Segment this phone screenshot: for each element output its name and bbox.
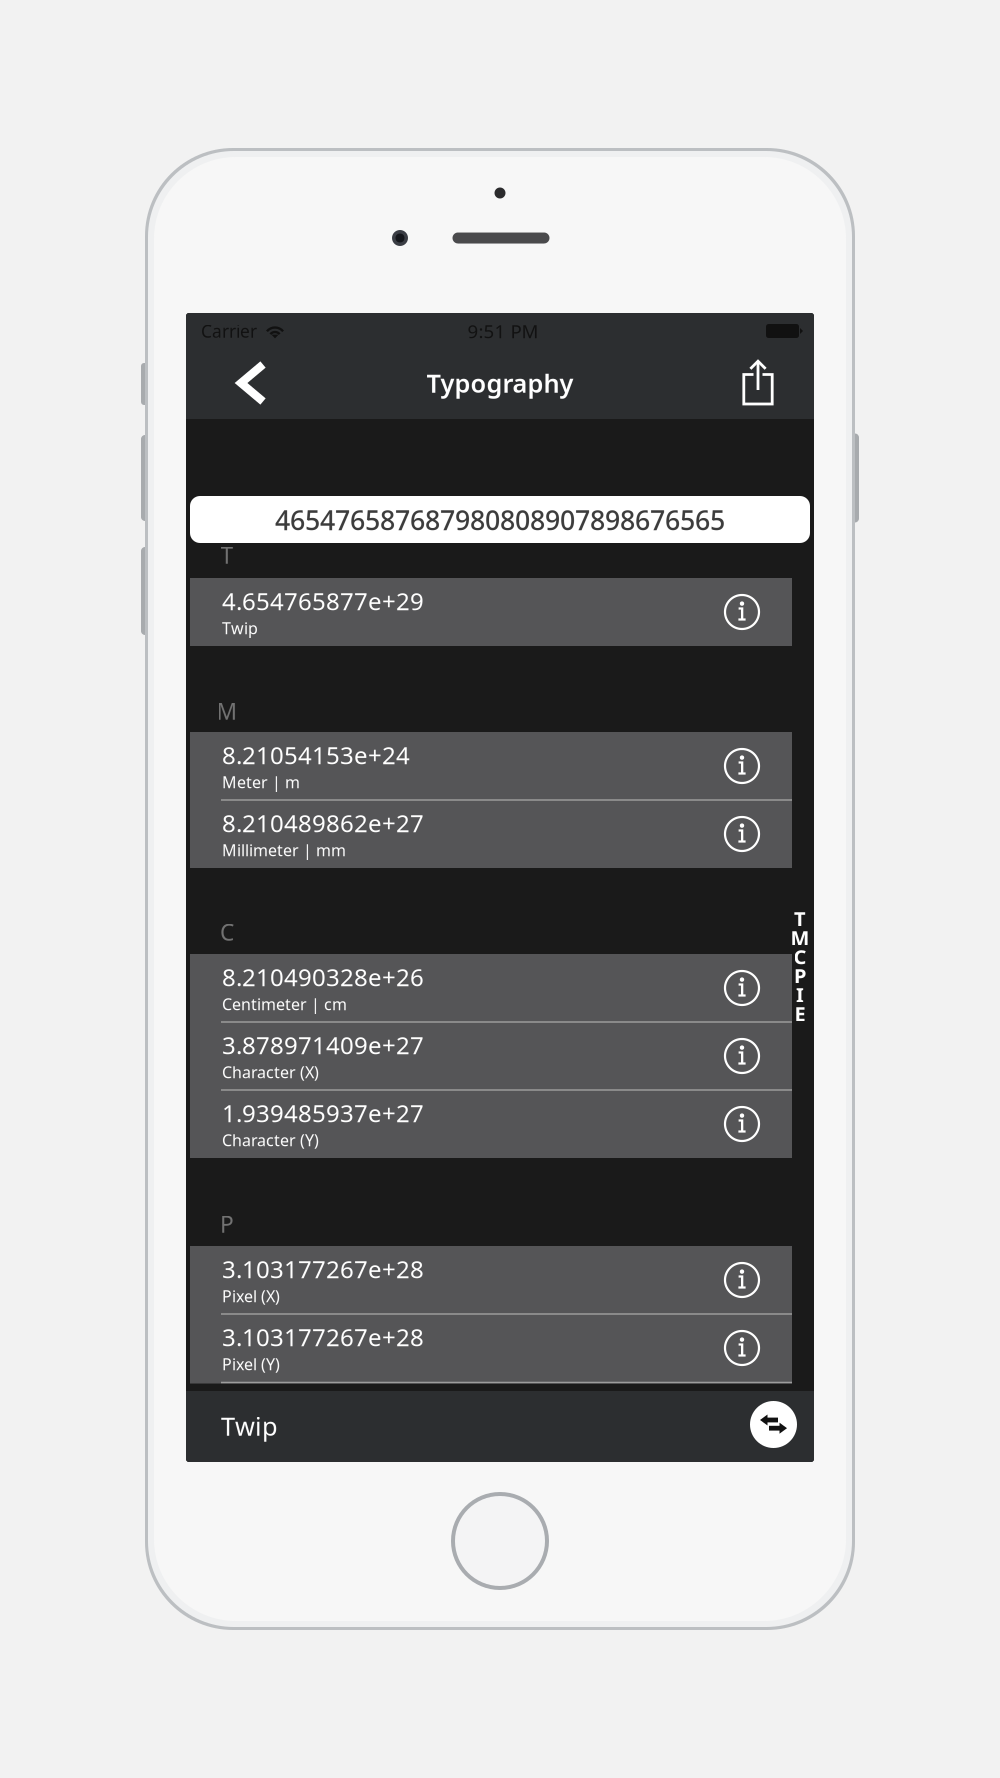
staticText: 4.654765877e+29 [222, 585, 424, 617]
button[interactable]: 1.939485937e+27 [190, 1090, 792, 1158]
staticText: Millimeter | mm [222, 839, 346, 861]
staticText: 8.210490328e+26 [222, 961, 424, 993]
button[interactable]: Back [215, 347, 289, 419]
staticText: 8.210489862e+27 [222, 807, 424, 839]
button[interactable]: 3.103177267e+28 [190, 1246, 792, 1314]
button[interactable]: 8.210489862e+27 [190, 800, 792, 868]
button[interactable]: Section index [786, 909, 814, 1023]
staticText: T [220, 540, 233, 570]
staticText: Character (X) [222, 1061, 319, 1083]
staticText: P [794, 962, 806, 989]
button[interactable]: 8.210490328e+26 [190, 954, 792, 1022]
button[interactable]: Share [721, 347, 795, 419]
staticText: P [220, 1209, 234, 1239]
staticText: Typography [426, 366, 573, 400]
staticText: C [793, 943, 806, 970]
button[interactable]: 3.103177267e+28 [190, 1314, 792, 1382]
button[interactable]: Swap units [745, 1396, 801, 1452]
staticText: M [790, 924, 809, 951]
staticText: 8.21054153e+24 [222, 739, 410, 771]
staticText: Twip [221, 1409, 278, 1443]
staticText: Pixel (Y) [222, 1353, 280, 1375]
staticText: 1.939485937e+27 [222, 1097, 424, 1129]
staticText: 465476587687980808907898676565 [275, 502, 725, 538]
staticText: Character (Y) [222, 1129, 319, 1151]
staticText: Pixel (X) [222, 1285, 280, 1307]
staticText: Carrier [201, 319, 257, 342]
staticText: Twip [222, 617, 258, 639]
staticText: Meter | m [222, 771, 300, 793]
button[interactable]: 3.878971409e+27 [190, 1022, 792, 1090]
staticText: 3.103177267e+28 [222, 1321, 424, 1353]
staticText: 9:51 PM [467, 319, 538, 343]
button[interactable]: 4.654765877e+29 [190, 578, 792, 646]
button[interactable]: 8.21054153e+24 [190, 732, 792, 800]
staticText: I [796, 981, 804, 1008]
staticText: C [220, 917, 234, 947]
staticText: E [794, 1000, 805, 1027]
staticText: T [794, 905, 806, 932]
staticText: Centimeter | cm [222, 993, 347, 1015]
staticText: M [216, 696, 237, 726]
staticText: 3.103177267e+28 [222, 1253, 424, 1285]
staticText: 3.878971409e+27 [222, 1029, 424, 1061]
